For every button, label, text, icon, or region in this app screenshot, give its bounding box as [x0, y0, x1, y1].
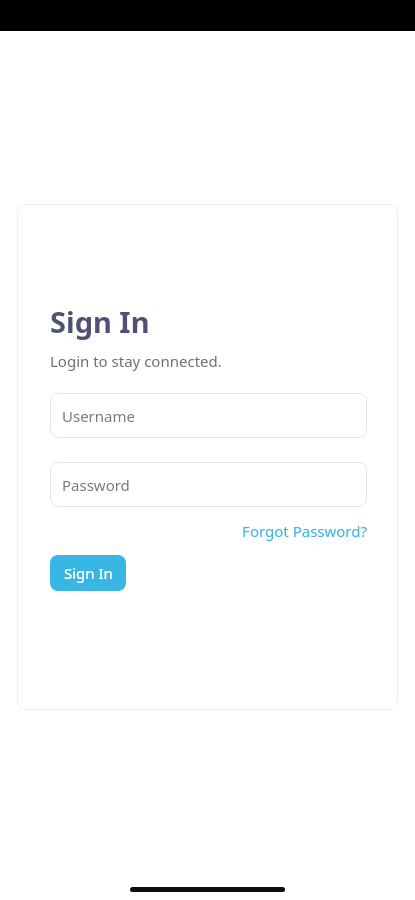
staticText: Password [62, 475, 130, 495]
staticText: Forgot Password? [242, 521, 367, 541]
staticText: Sign In [50, 302, 150, 341]
button[interactable]: Username [50, 393, 367, 438]
button[interactable]: Forgot Password? [242, 521, 367, 541]
staticText: Sign In [64, 563, 113, 583]
staticText: Login to stay connected. [50, 351, 222, 371]
staticText: Username [62, 406, 135, 426]
button[interactable]: Sign In [50, 555, 126, 591]
button[interactable]: Password [50, 462, 367, 507]
